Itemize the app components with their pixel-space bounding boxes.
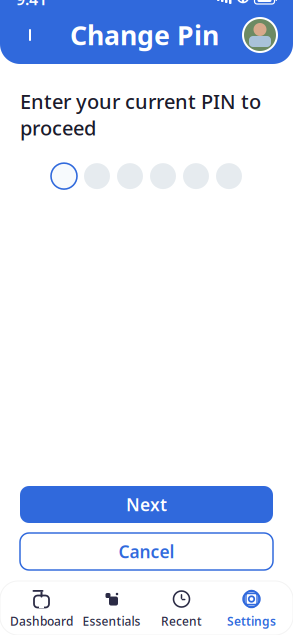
staticText: Essentials bbox=[82, 613, 140, 629]
button[interactable]: Dashboard bbox=[6, 587, 76, 631]
button[interactable]: Essentials bbox=[76, 587, 146, 631]
staticText: Settings bbox=[227, 613, 276, 629]
staticText: Next bbox=[126, 493, 167, 516]
staticText: Change Pin bbox=[70, 17, 219, 53]
staticText: 9:41 bbox=[16, 0, 47, 10]
staticText: Enter your current PIN to proceed bbox=[20, 88, 261, 141]
button[interactable]: Profile bbox=[241, 16, 279, 54]
button[interactable]: Cancel bbox=[20, 533, 273, 570]
button[interactable]: Back bbox=[14, 18, 48, 52]
staticText: Recent bbox=[161, 613, 202, 629]
staticText: Dashboard bbox=[10, 613, 73, 629]
button[interactable]: Settings bbox=[216, 587, 286, 631]
staticText: Cancel bbox=[118, 540, 174, 563]
button[interactable]: Recent bbox=[146, 587, 216, 631]
button[interactable]: Next bbox=[20, 486, 273, 523]
